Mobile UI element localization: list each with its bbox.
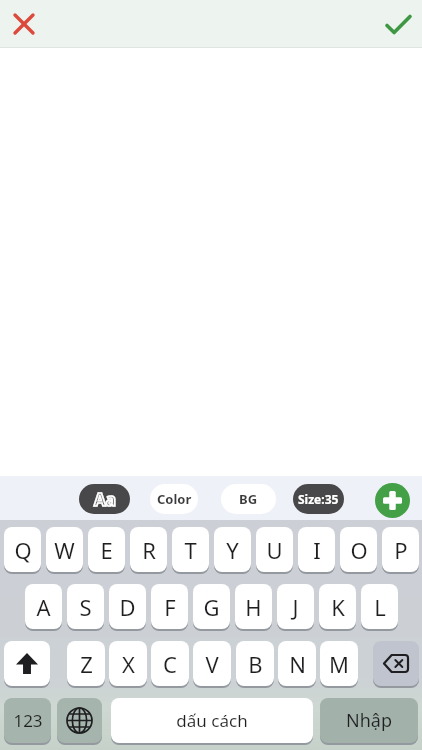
- staticText: Color: [157, 490, 192, 508]
- button[interactable]: V: [193, 641, 231, 686]
- staticText: Y: [226, 535, 239, 565]
- button[interactable]: [382, 8, 414, 40]
- button[interactable]: H: [235, 584, 272, 629]
- staticText: Nhập: [346, 708, 392, 733]
- staticText: V: [205, 649, 219, 679]
- staticText: P: [394, 535, 408, 565]
- button[interactable]: [375, 483, 410, 518]
- button[interactable]: Aa: [79, 484, 130, 514]
- button[interactable]: [57, 698, 102, 743]
- button[interactable]: D: [109, 584, 146, 629]
- button[interactable]: [4, 641, 50, 686]
- button[interactable]: C: [151, 641, 189, 686]
- button[interactable]: Size:35: [293, 484, 344, 514]
- staticText: dấu cách: [176, 709, 248, 732]
- button[interactable]: A: [25, 584, 62, 629]
- button[interactable]: E: [88, 527, 125, 572]
- button[interactable]: N: [278, 641, 316, 686]
- button[interactable]: U: [256, 527, 293, 572]
- staticText: Q: [14, 535, 32, 565]
- button[interactable]: J: [277, 584, 314, 629]
- staticText: Aa: [94, 488, 116, 511]
- staticText: M: [329, 649, 349, 679]
- button[interactable]: Nhập: [320, 698, 418, 743]
- staticText: D: [119, 592, 136, 622]
- staticText: A: [36, 592, 51, 622]
- staticText: W: [54, 535, 75, 565]
- staticText: O: [350, 535, 368, 565]
- button[interactable]: P: [382, 527, 419, 572]
- staticText: G: [203, 592, 220, 622]
- staticText: L: [374, 592, 386, 622]
- staticText: U: [266, 535, 283, 565]
- staticText: R: [142, 535, 156, 565]
- button[interactable]: 123: [4, 698, 51, 743]
- button[interactable]: O: [340, 527, 377, 572]
- button[interactable]: I: [298, 527, 335, 572]
- staticText: F: [164, 592, 176, 622]
- button[interactable]: S: [67, 584, 104, 629]
- staticText: K: [331, 592, 345, 622]
- staticText: 123: [13, 709, 43, 732]
- button[interactable]: G: [193, 584, 230, 629]
- button[interactable]: Q: [4, 527, 41, 572]
- staticText: J: [292, 592, 299, 622]
- button[interactable]: K: [319, 584, 356, 629]
- button[interactable]: M: [320, 641, 358, 686]
- staticText: H: [245, 592, 262, 622]
- staticText: C: [163, 649, 177, 679]
- button[interactable]: R: [130, 527, 167, 572]
- staticText: Z: [80, 649, 93, 679]
- button[interactable]: Y: [214, 527, 251, 572]
- button[interactable]: X: [109, 641, 147, 686]
- staticText: Size:35: [298, 491, 339, 507]
- staticText: I: [313, 535, 321, 565]
- staticText: B: [248, 649, 263, 679]
- button[interactable]: [8, 8, 40, 40]
- button[interactable]: L: [361, 584, 398, 629]
- button[interactable]: F: [151, 584, 188, 629]
- button[interactable]: Color: [150, 484, 198, 514]
- staticText: S: [79, 592, 92, 622]
- button[interactable]: Z: [67, 641, 105, 686]
- button[interactable]: BG: [221, 484, 276, 514]
- staticText: X: [122, 649, 135, 679]
- button[interactable]: [373, 641, 419, 686]
- button[interactable]: B: [236, 641, 274, 686]
- staticText: T: [184, 535, 197, 565]
- staticText: N: [289, 649, 306, 679]
- staticText: E: [100, 535, 113, 565]
- button[interactable]: dấu cách: [111, 698, 313, 743]
- button[interactable]: T: [172, 527, 209, 572]
- button[interactable]: W: [46, 527, 83, 572]
- staticText: BG: [239, 490, 258, 508]
